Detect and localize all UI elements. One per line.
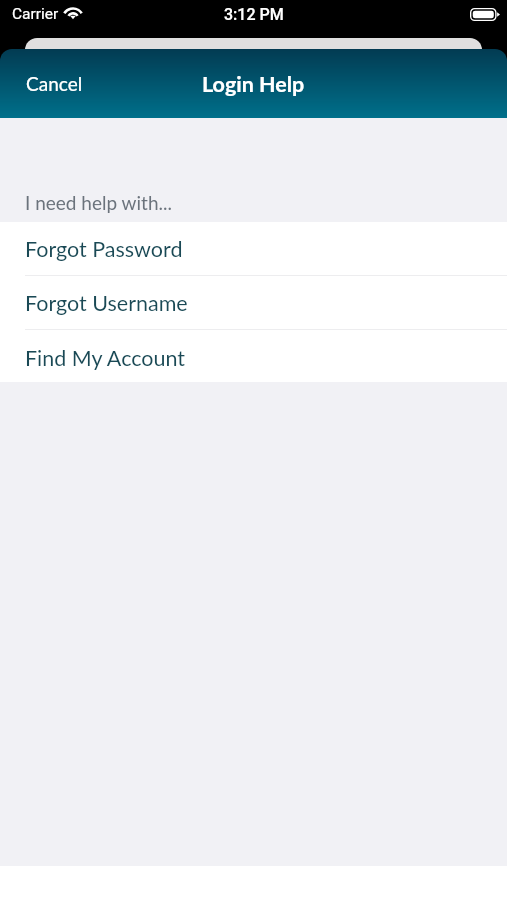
staticText: Forgot Username — [25, 290, 188, 316]
staticText: I need help with... — [25, 191, 172, 214]
other: Wi-Fi — [63, 5, 83, 19]
button[interactable]: Forgot Username — [0, 276, 507, 330]
staticText: Cancel — [26, 72, 83, 95]
staticText: Carrier — [12, 5, 59, 23]
staticText: 3:12 PM — [224, 5, 284, 24]
staticText: Forgot Password — [25, 236, 183, 262]
button[interactable]: Cancel — [10, 62, 99, 105]
button[interactable]: Forgot Password — [0, 222, 507, 276]
button[interactable]: Find My Account — [0, 330, 507, 382]
other: Battery — [470, 8, 500, 21]
staticText: Find My Account — [25, 345, 186, 371]
staticText: Login Help — [202, 71, 305, 97]
